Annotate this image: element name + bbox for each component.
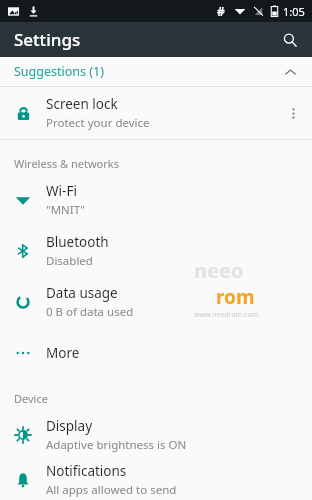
staticText: Settings <box>14 28 81 51</box>
staticText: rom <box>216 284 255 310</box>
staticText: More <box>46 344 80 362</box>
button[interactable]: More options <box>280 100 306 126</box>
staticText: Suggestions (1) <box>14 63 281 80</box>
staticText: Screen lock <box>46 95 118 113</box>
button[interactable]: Suggestions (1) <box>0 57 312 86</box>
button[interactable]: Search <box>276 26 304 54</box>
button[interactable]: Notifications <box>0 460 312 500</box>
staticText: Data usage <box>46 284 118 302</box>
staticText: Disabled <box>46 253 93 269</box>
staticText: Bluetooth <box>46 233 109 251</box>
staticText: All apps allowed to send <box>46 482 177 498</box>
staticText: Device <box>14 391 48 406</box>
staticText: Protect your device <box>46 115 150 131</box>
staticText: Wireless & networks <box>14 156 119 171</box>
button[interactable]: Data usage <box>0 276 312 327</box>
staticText: "MNIT" <box>46 202 85 218</box>
button[interactable]: More <box>0 327 312 378</box>
staticText: 1:05 <box>283 4 305 19</box>
staticText: Wi-Fi <box>46 182 77 200</box>
button[interactable]: Wi-Fi <box>0 174 312 225</box>
staticText: Notifications <box>46 462 127 480</box>
staticText: Adaptive brightness is ON <box>46 437 187 453</box>
staticText: 0 B of data used <box>46 304 134 320</box>
staticText: neeo <box>194 257 244 284</box>
button[interactable]: Screen lock <box>0 87 312 139</box>
staticText: # <box>217 3 225 19</box>
button[interactable]: Bluetooth <box>0 225 312 276</box>
button[interactable]: Display <box>0 409 312 460</box>
staticText: www.needrom.com <box>194 310 259 320</box>
other: Collapse suggestions <box>281 63 299 81</box>
staticText: Display <box>46 417 93 435</box>
